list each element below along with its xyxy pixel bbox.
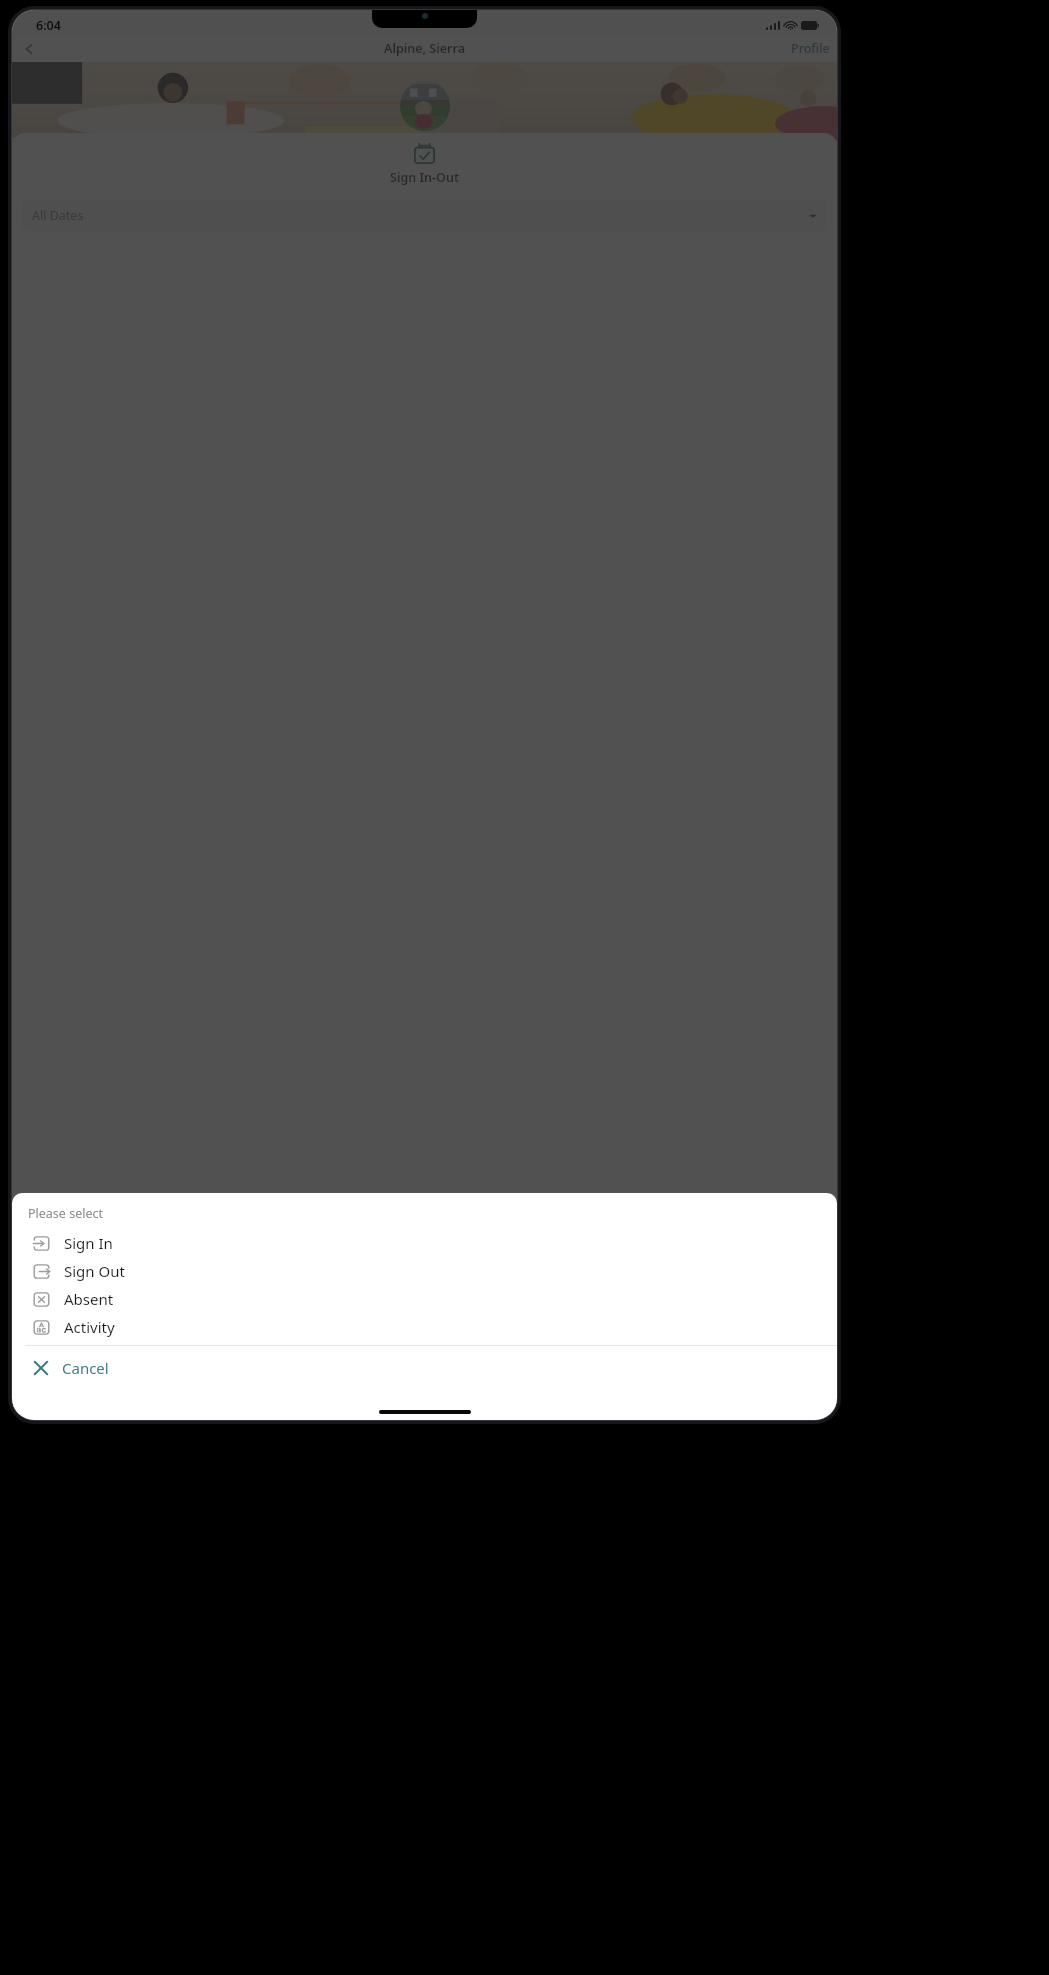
button[interactable]: Sign In — [12, 1229, 837, 1257]
button[interactable]: Child photo — [400, 81, 450, 131]
staticText: Sign In — [64, 1233, 113, 1253]
button[interactable]: Cancel — [12, 1346, 837, 1390]
button[interactable]: Sign Out — [12, 1257, 837, 1285]
staticText: Please select — [28, 1205, 103, 1222]
button[interactable]: Activity — [12, 1313, 837, 1341]
staticText: Alpine, Sierra — [384, 40, 465, 57]
staticText: 6:04 — [36, 17, 61, 34]
button[interactable]: Back — [16, 36, 42, 62]
button[interactable]: Profile — [791, 40, 830, 57]
staticText: Sign Out — [64, 1261, 125, 1281]
staticText: Cancel — [62, 1358, 109, 1378]
button[interactable]: Absent — [12, 1285, 837, 1313]
staticText: All Dates — [32, 207, 84, 224]
staticText: Absent — [64, 1289, 114, 1309]
staticText: Profile — [791, 40, 830, 57]
staticText: Sign In-Out — [390, 169, 459, 186]
staticText: Activity — [64, 1317, 115, 1337]
